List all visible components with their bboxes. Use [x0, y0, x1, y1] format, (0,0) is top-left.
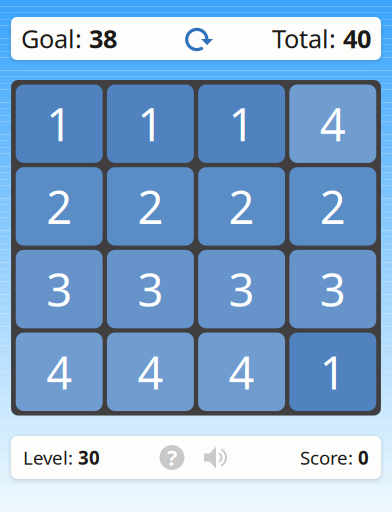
button[interactable]: 1 [107, 84, 194, 163]
staticText: ? [167, 443, 177, 472]
staticText: 3 [137, 259, 163, 319]
staticText: 3 [46, 259, 72, 319]
staticText: 3 [320, 259, 346, 319]
staticText: 2 [229, 176, 255, 236]
button[interactable]: 1 [289, 333, 376, 411]
staticText: 1 [137, 94, 163, 154]
staticText: Score: 0 [300, 445, 369, 470]
button[interactable]: 1 [16, 84, 103, 163]
button[interactable]: 4 [107, 333, 194, 411]
staticText: 2 [46, 176, 72, 236]
staticText: 1 [229, 94, 255, 154]
button[interactable]: 4 [289, 84, 376, 163]
button[interactable]: 3 [107, 250, 194, 328]
button[interactable]: 2 [16, 167, 103, 246]
button[interactable]: 2 [289, 167, 376, 246]
staticText: 4 [229, 342, 255, 402]
staticText: Total: 40 [272, 22, 371, 55]
staticText: 1 [320, 342, 346, 402]
button[interactable]: 3 [198, 250, 285, 328]
button[interactable]: 3 [289, 250, 376, 328]
staticText: 2 [320, 176, 346, 236]
button[interactable]: 4 [198, 333, 285, 411]
button[interactable]: Help [158, 444, 185, 471]
staticText: Goal: 38 [21, 22, 117, 55]
button[interactable]: 3 [16, 250, 103, 328]
staticText: 1 [46, 94, 72, 154]
button[interactable]: 2 [198, 167, 285, 246]
staticText: 4 [320, 94, 346, 154]
button[interactable]: 2 [107, 167, 194, 246]
button[interactable]: Sound [202, 443, 230, 471]
button[interactable]: 1 [198, 84, 285, 163]
staticText: 4 [137, 342, 163, 402]
staticText: 4 [46, 342, 72, 402]
button[interactable]: 4 [16, 333, 103, 411]
staticText: Level: 30 [23, 445, 100, 470]
staticText: 2 [137, 176, 163, 236]
staticText: 3 [229, 259, 255, 319]
button[interactable]: Restart [183, 23, 214, 53]
